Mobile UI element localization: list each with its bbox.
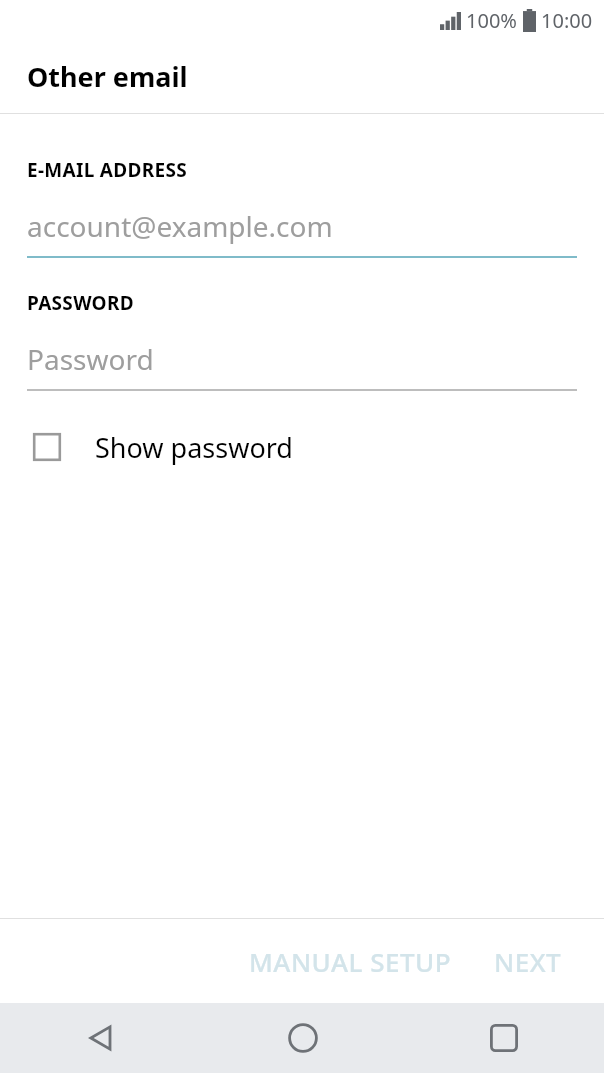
staticText: PASSWORD bbox=[27, 290, 134, 316]
staticText: 10:00 bbox=[541, 7, 593, 34]
button[interactable]: Show password bbox=[0, 419, 604, 475]
staticText: MANUAL SETUP bbox=[249, 944, 452, 979]
button[interactable]: Back bbox=[0, 1003, 202, 1073]
button[interactable]: Password bbox=[27, 340, 577, 391]
staticText: account@example.com bbox=[27, 207, 333, 245]
button[interactable]: MANUAL SETUP bbox=[239, 932, 462, 991]
staticText: Show password bbox=[95, 429, 293, 466]
staticText: 100% bbox=[466, 7, 517, 34]
staticText: Password bbox=[27, 340, 154, 378]
button[interactable]: Recent apps bbox=[403, 1003, 604, 1073]
button[interactable]: Home bbox=[202, 1003, 403, 1073]
staticText: NEXT bbox=[494, 944, 562, 979]
staticText: E-MAIL ADDRESS bbox=[27, 157, 187, 183]
staticText: Other email bbox=[27, 58, 188, 95]
button[interactable]: NEXT bbox=[484, 932, 572, 991]
button[interactable]: account@example.com bbox=[27, 207, 577, 258]
